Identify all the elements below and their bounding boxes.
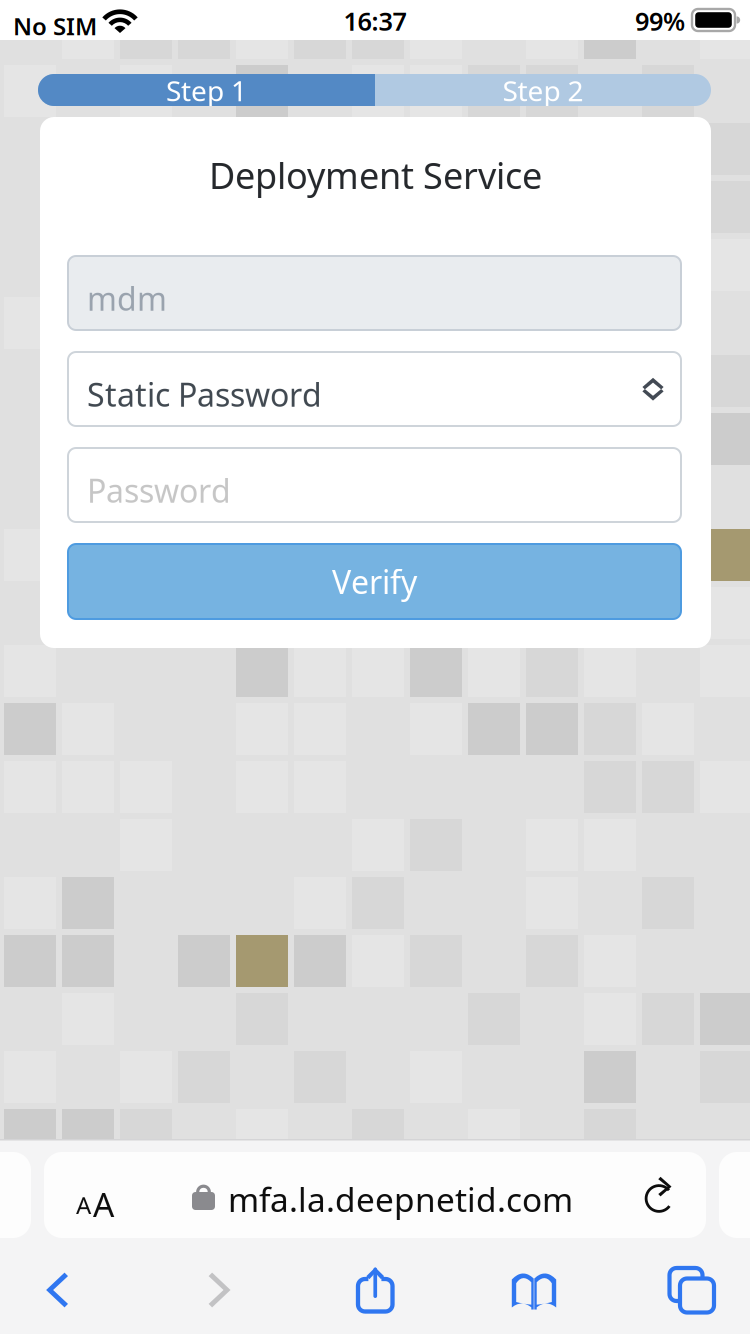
staticText: Password xyxy=(87,469,231,511)
button[interactable]: Forward xyxy=(148,1253,298,1328)
button[interactable]: Share xyxy=(300,1253,450,1328)
staticText: Verify xyxy=(332,560,417,603)
button[interactable]: A xyxy=(44,1152,706,1238)
button[interactable]: Bookmarks xyxy=(459,1253,609,1328)
staticText: mdm xyxy=(87,277,167,319)
button[interactable]: Back xyxy=(0,1253,132,1328)
staticText: 99% xyxy=(635,4,685,38)
staticText: mfa.la.deepnetid.com xyxy=(228,1177,573,1221)
button[interactable]: Tabs xyxy=(617,1253,750,1328)
staticText: No SIM xyxy=(13,10,97,42)
staticText: Deployment Service xyxy=(209,151,542,199)
staticText: Step 1 xyxy=(166,72,247,109)
staticText: A xyxy=(93,1182,114,1226)
staticText: Step 2 xyxy=(502,72,583,109)
button[interactable]: Step 1 xyxy=(38,74,711,106)
staticText: 16:37 xyxy=(343,4,406,38)
staticText: Static Password xyxy=(87,373,322,415)
button[interactable]: Verify xyxy=(68,544,681,619)
staticText: A xyxy=(76,1189,91,1221)
